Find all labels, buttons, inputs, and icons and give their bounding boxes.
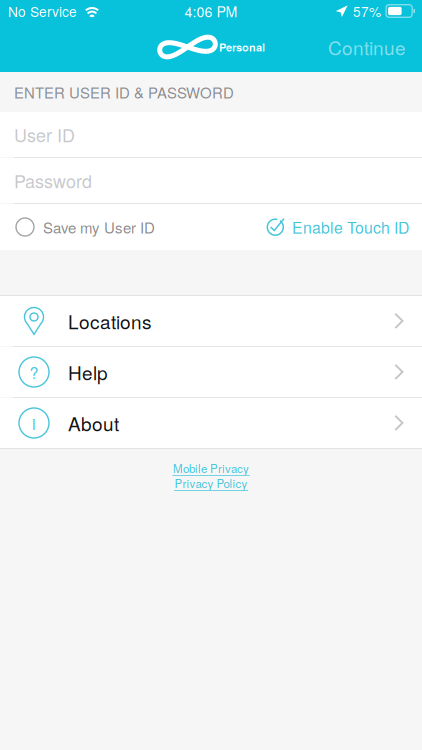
- staticText: About: [68, 409, 119, 437]
- button[interactable]: Mobile Privacy: [172, 461, 249, 476]
- staticText: Mobile Privacy: [173, 460, 249, 476]
- button[interactable]: Continue: [312, 22, 422, 72]
- staticText: Password: [14, 168, 92, 193]
- button[interactable]: Enable Touch ID: [266, 216, 409, 238]
- button[interactable]: ?: [0, 347, 422, 397]
- staticText: Continue: [328, 33, 406, 61]
- button[interactable]: Save my User ID: [16, 216, 155, 238]
- staticText: No Service: [8, 1, 77, 21]
- staticText: Help: [68, 358, 108, 386]
- staticText: Locations: [68, 307, 152, 335]
- staticText: ENTER USER ID & PASSWORD: [14, 81, 234, 103]
- staticText: User ID: [14, 122, 75, 147]
- button[interactable]: Locations: [0, 296, 422, 346]
- staticText: ?: [29, 360, 38, 383]
- staticText: 57%: [353, 1, 381, 21]
- button[interactable]: i: [0, 398, 422, 448]
- staticText: Save my User ID: [43, 216, 155, 238]
- staticText: 4:06 PM: [184, 1, 237, 21]
- button[interactable]: Privacy Policy: [174, 476, 248, 491]
- staticText: Enable Touch ID: [292, 216, 409, 238]
- staticText: i: [32, 411, 36, 434]
- staticText: Privacy Policy: [174, 475, 247, 491]
- staticText: Personal: [219, 39, 265, 55]
